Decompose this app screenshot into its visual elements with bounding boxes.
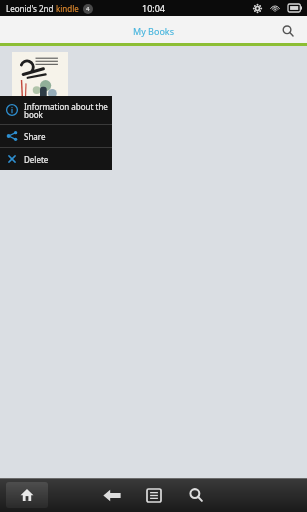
button[interactable]: Мифы и легенды xyxy=(12,52,68,127)
button[interactable]: Share xyxy=(0,125,112,147)
button[interactable]: Back xyxy=(97,480,127,510)
staticText: народов xyxy=(12,119,37,127)
staticText: 10:04 xyxy=(142,2,166,14)
staticText: 4 xyxy=(86,5,90,13)
button[interactable]: Menu xyxy=(139,480,169,510)
button[interactable]: Delete xyxy=(0,148,112,170)
staticText: Leonid's 2nd xyxy=(6,3,56,14)
staticText: Мифы и легенды xyxy=(12,111,62,119)
staticText: Delete xyxy=(24,154,49,165)
staticText: kindle xyxy=(56,3,79,14)
button[interactable]: Home xyxy=(6,482,48,508)
button[interactable]: Search xyxy=(181,480,211,510)
staticText: Information about the book xyxy=(24,101,108,120)
staticText: My Books xyxy=(133,25,174,37)
button[interactable]: My Books xyxy=(0,16,307,46)
button[interactable]: Search xyxy=(277,20,299,42)
staticText: Share xyxy=(24,131,46,142)
button[interactable]: Information about the book xyxy=(0,96,112,124)
